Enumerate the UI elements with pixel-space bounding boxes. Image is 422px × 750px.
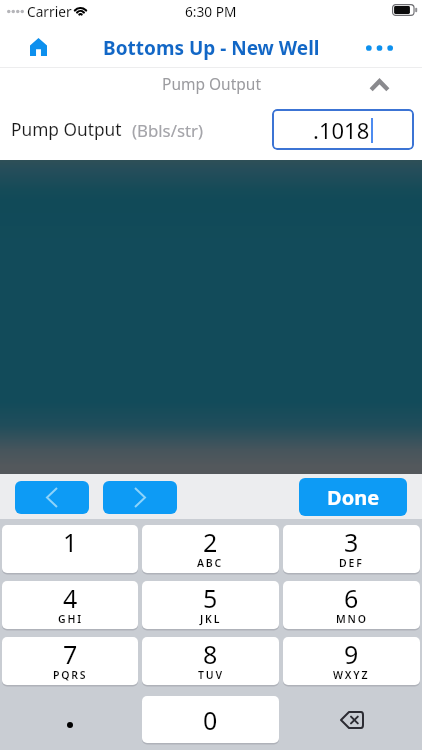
button[interactable]: Done — [299, 478, 407, 516]
button[interactable]: Decimal point — [0, 696, 140, 743]
staticText: 7 — [63, 637, 78, 671]
staticText: 2 — [203, 525, 218, 559]
staticText: TUV — [198, 668, 224, 682]
staticText: Bottoms Up - New Well — [103, 35, 320, 61]
staticText: DEF — [339, 556, 364, 570]
staticText: MNO — [336, 612, 368, 626]
staticText: (Bbls/str) — [132, 119, 204, 142]
staticText: 9 — [344, 637, 359, 671]
button[interactable]: 9 — [283, 637, 420, 685]
staticText: 6:30 PM — [185, 2, 237, 21]
button[interactable]: 1 — [2, 525, 138, 573]
button[interactable]: Collapse — [355, 68, 403, 101]
staticText: JKL — [200, 612, 222, 626]
staticText: WXYZ — [333, 668, 370, 682]
staticText: 8 — [203, 637, 218, 671]
button[interactable]: 4 — [2, 581, 138, 629]
staticText: Carrier — [27, 2, 72, 21]
button[interactable]: 8 — [142, 637, 279, 685]
staticText: 4 — [63, 581, 78, 615]
staticText: 1 — [63, 525, 78, 559]
button[interactable]: Home — [14, 28, 62, 67]
staticText: PQRS — [53, 668, 88, 682]
staticText: 3 — [344, 525, 359, 559]
staticText: Done — [327, 484, 380, 511]
button[interactable]: .1018 — [272, 109, 414, 150]
button[interactable]: Next field — [103, 481, 177, 514]
button[interactable]: 2 — [142, 525, 279, 573]
staticText: Pump Output — [11, 118, 122, 142]
button[interactable]: Backspace — [281, 696, 422, 743]
button[interactable]: 6 — [283, 581, 420, 629]
staticText: ABC — [197, 556, 224, 570]
staticText: Pump Output — [162, 73, 261, 94]
button[interactable]: 0 — [142, 696, 279, 743]
staticText: .1018 — [313, 115, 370, 145]
staticText: 5 — [203, 581, 218, 615]
staticText: GHI — [58, 612, 83, 626]
button[interactable]: 3 — [283, 525, 420, 573]
button[interactable]: 5 — [142, 581, 279, 629]
button[interactable]: Previous field — [15, 481, 89, 514]
staticText: 6 — [344, 581, 359, 615]
staticText: 0 — [203, 703, 218, 737]
button[interactable]: More options — [355, 28, 403, 67]
button[interactable]: 7 — [2, 637, 138, 685]
